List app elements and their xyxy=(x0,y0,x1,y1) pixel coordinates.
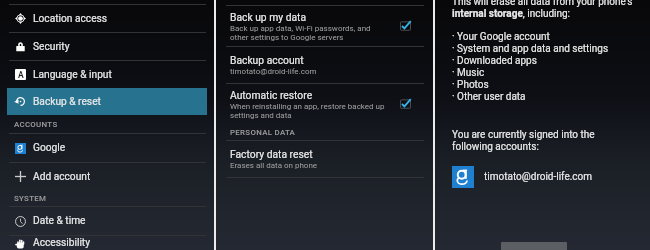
staticText: Accessibility xyxy=(33,237,91,249)
staticText: Backup account xyxy=(230,54,304,66)
staticText: · Downloaded apps xyxy=(452,55,537,67)
staticText: ACCOUNTS xyxy=(14,120,58,129)
staticText: timotato@droid-life.com xyxy=(484,171,593,183)
staticText: Google xyxy=(33,142,66,154)
staticText: Backup & reset xyxy=(33,96,101,108)
staticText: Factory data reset xyxy=(230,148,313,160)
button[interactable]: Location access xyxy=(15,5,214,32)
staticText: SYSTEM xyxy=(14,194,47,203)
staticText: Date & time xyxy=(33,215,86,227)
staticText: Back up app data, Wi-Fi passwords, and o… xyxy=(230,24,371,42)
staticText: · System and app data and settings xyxy=(452,43,609,55)
staticText: internal storage, including: xyxy=(452,8,571,20)
button[interactable]: Accessibility xyxy=(15,236,214,250)
button[interactable]: Google xyxy=(15,134,214,162)
button[interactable]: Factory data reset xyxy=(230,141,424,177)
staticText: PERSONAL DATA xyxy=(230,128,296,137)
staticText: · Photos xyxy=(452,79,489,91)
staticText: You are currently signed into the follow… xyxy=(452,129,595,153)
button[interactable]: Backup & reset xyxy=(15,88,207,115)
button[interactable]: Date & time xyxy=(15,207,214,235)
staticText: Location access xyxy=(33,13,108,25)
staticText: Security xyxy=(33,41,70,53)
button[interactable]: Add account xyxy=(15,163,214,190)
staticText: timotato@droid-life.com xyxy=(230,67,317,76)
staticText: · Music xyxy=(452,67,485,79)
staticText: This will erase all data from your phone… xyxy=(452,0,633,8)
staticText: Language & input xyxy=(33,69,112,81)
staticText: Back up my data xyxy=(230,11,307,23)
staticText: A xyxy=(18,70,24,80)
button[interactable]: Automatic restore xyxy=(230,84,424,124)
staticText: Add account xyxy=(33,171,91,183)
staticText: Erases all data on phone xyxy=(230,161,318,170)
button[interactable]: Backup account xyxy=(230,47,424,83)
button[interactable]: Back up my data xyxy=(230,6,424,46)
staticText: · Other user data xyxy=(452,91,526,103)
button[interactable]: A xyxy=(15,61,214,88)
button[interactable]: Security xyxy=(15,33,214,60)
staticText: · Your Google account xyxy=(452,31,550,43)
staticText: Automatic restore xyxy=(230,89,313,101)
staticText: When reinstalling an app, restore backed… xyxy=(230,102,385,120)
